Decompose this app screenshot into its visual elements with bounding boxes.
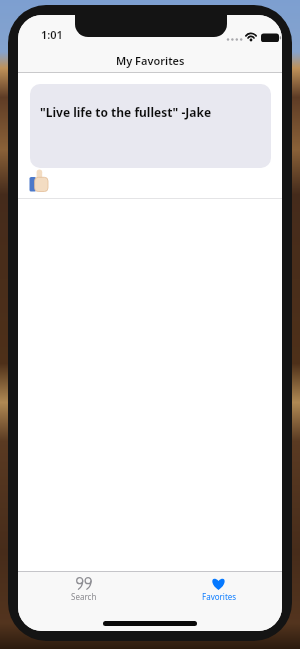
staticText: Favorites [202,591,237,602]
button[interactable] [29,169,51,194]
button[interactable]: "Live life to the fullest" -Jake [30,84,271,168]
staticText: My Favorites [116,53,185,68]
staticText: Search [71,591,97,602]
staticText: "Live life to the fullest" -Jake [40,104,212,120]
button[interactable]: Favorites [189,572,249,606]
staticText: 1:01 [41,27,63,42]
button[interactable]: Search [54,572,114,606]
